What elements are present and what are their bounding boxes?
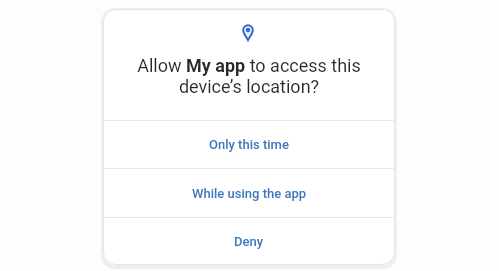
button[interactable]: Only this time bbox=[103, 121, 395, 168]
staticText: Allow My app to access this device’s loc… bbox=[103, 55, 395, 97]
staticText: While using the app bbox=[192, 186, 307, 201]
staticText: Deny bbox=[234, 234, 264, 249]
staticText: Only this time bbox=[209, 137, 289, 152]
button[interactable]: Deny bbox=[103, 218, 395, 265]
button[interactable]: While using the app bbox=[103, 169, 395, 217]
